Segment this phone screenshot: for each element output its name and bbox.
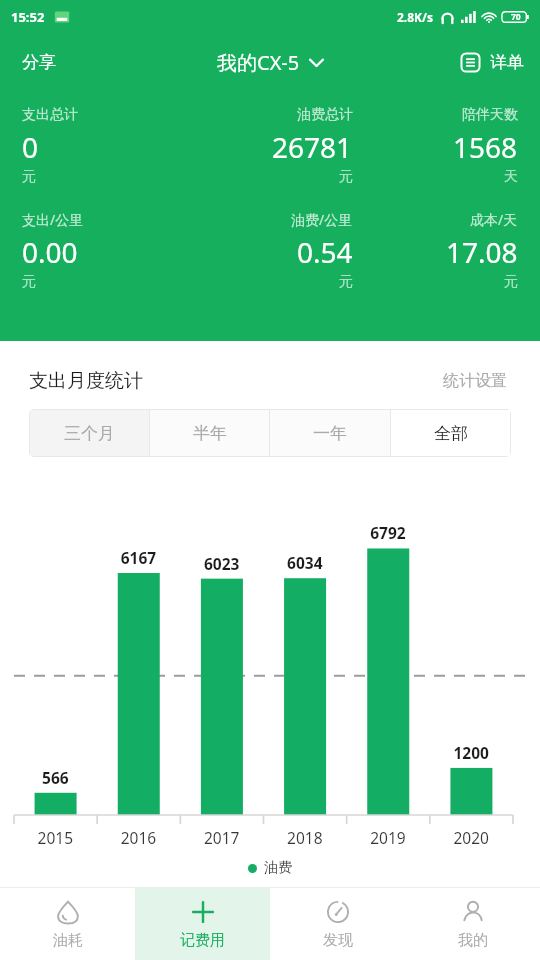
staticText: 半年 [193, 423, 227, 444]
staticText: 1568 [453, 128, 518, 166]
button[interactable]: 分享 [0, 34, 78, 90]
staticText: 全部 [434, 423, 468, 444]
button[interactable]: 详单 [448, 34, 540, 90]
staticText: 元 [339, 273, 353, 291]
staticText: 陪伴天数 [462, 106, 518, 124]
staticText: 0 [22, 128, 39, 166]
staticText: 详单 [490, 52, 524, 73]
staticText: 发现 [323, 931, 353, 950]
button[interactable]: 记费用 [135, 888, 270, 960]
button[interactable]: 我的CX-5 [209, 41, 332, 84]
staticText: 油费总计 [297, 106, 353, 124]
button[interactable]: 一年 [270, 410, 390, 456]
staticText: 元 [22, 273, 36, 291]
staticText: 天 [504, 168, 518, 186]
staticText: 元 [339, 168, 353, 186]
staticText: 元 [22, 168, 36, 186]
button[interactable]: 全部 [391, 410, 510, 456]
staticText: 0.54 [297, 233, 353, 271]
staticText: 一年 [313, 423, 347, 444]
button[interactable]: 半年 [150, 410, 269, 456]
staticText: 支出/公里 [22, 210, 84, 229]
staticText: 我的CX-5 [217, 49, 300, 76]
staticText: 26781 [272, 128, 353, 166]
staticText: 元 [504, 273, 518, 291]
staticText: 0.00 [22, 233, 78, 271]
staticText: 油耗 [53, 931, 83, 950]
button[interactable]: 统计设置 [439, 367, 511, 395]
button[interactable]: 三个月 [30, 410, 149, 456]
staticText: 三个月 [64, 423, 115, 444]
staticText: 17.08 [446, 233, 518, 271]
button[interactable]: 油耗 [0, 888, 135, 960]
staticText: 我的 [458, 931, 488, 950]
staticText: 70 [511, 11, 521, 23]
staticText: 2.8K/s [397, 9, 434, 25]
staticText: 15:52 [11, 8, 45, 26]
staticText: 成本/天 [470, 210, 518, 229]
staticText: 支出月度统计 [29, 369, 143, 393]
staticText: 记费用 [180, 931, 225, 950]
button[interactable]: 发现 [270, 888, 405, 960]
staticText: 油费/公里 [291, 210, 353, 229]
staticText: 支出总计 [22, 106, 78, 124]
staticText: 油费 [264, 859, 292, 877]
staticText: 统计设置 [443, 371, 507, 391]
staticText: 分享 [22, 52, 56, 73]
other: 详单 [460, 52, 481, 73]
button[interactable]: 我的 [405, 888, 540, 960]
